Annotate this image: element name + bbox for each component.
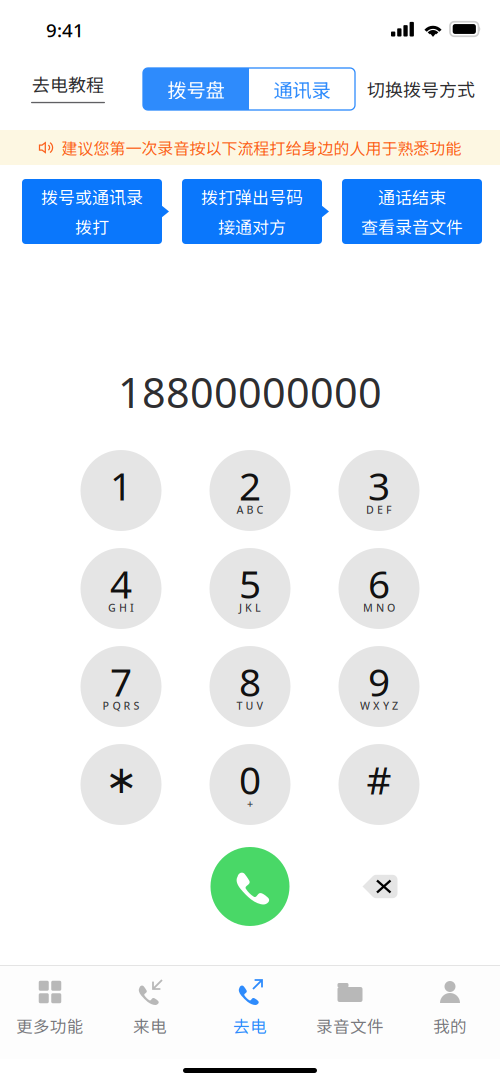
staticText: D E F bbox=[366, 502, 392, 517]
button[interactable]: 拨打弹出号码 bbox=[182, 179, 329, 244]
staticText: 拨打 bbox=[75, 214, 109, 239]
staticText: 2 bbox=[239, 460, 261, 511]
staticText: 通讯录 bbox=[273, 75, 330, 103]
staticText: 1 bbox=[110, 460, 132, 511]
button[interactable]: Delete bbox=[362, 873, 398, 900]
staticText: 拨打弹出号码 bbox=[201, 184, 303, 209]
button[interactable]: 5 bbox=[209, 548, 290, 629]
button[interactable]: 录音文件 bbox=[300, 962, 400, 1062]
button[interactable]: 0 bbox=[209, 744, 290, 825]
staticText: 接通对方 bbox=[218, 214, 286, 239]
staticText: 查看录音文件 bbox=[361, 214, 463, 239]
staticText: G H I bbox=[108, 600, 134, 615]
staticText: 9 bbox=[368, 656, 390, 707]
staticText: 去电 bbox=[233, 1013, 267, 1037]
button[interactable]: 更多功能 bbox=[0, 962, 100, 1062]
staticText: 4 bbox=[110, 558, 132, 609]
staticText: T U V bbox=[236, 698, 263, 713]
button[interactable]: 拨号或通讯录 bbox=[22, 179, 169, 244]
button[interactable]: 8 bbox=[209, 646, 290, 727]
staticText: 来电 bbox=[133, 1013, 167, 1037]
staticText: J K L bbox=[239, 600, 261, 615]
staticText: P Q R S bbox=[102, 698, 139, 713]
button[interactable]: 1 bbox=[80, 450, 161, 531]
button[interactable]: 4 bbox=[80, 548, 161, 629]
button[interactable]: 3 bbox=[338, 450, 419, 531]
staticText: 更多功能 bbox=[16, 1013, 84, 1037]
button[interactable]: ∗ bbox=[80, 744, 161, 825]
staticText: + bbox=[247, 796, 253, 811]
staticText: 9:41 bbox=[46, 18, 84, 42]
button[interactable]: 2 bbox=[209, 450, 290, 531]
staticText: 5 bbox=[239, 558, 261, 609]
staticText: 18800000000 bbox=[118, 365, 382, 419]
staticText: 我的 bbox=[433, 1013, 467, 1037]
button[interactable]: 通话结束 bbox=[342, 179, 489, 244]
staticText: 6 bbox=[368, 558, 390, 609]
staticText: A B C bbox=[236, 502, 263, 517]
button[interactable]: 通讯录 bbox=[249, 68, 355, 110]
button[interactable]: 拨号盘 bbox=[143, 68, 249, 110]
staticText: 0 bbox=[239, 754, 261, 805]
staticText: 拨号或通讯录 bbox=[41, 184, 143, 209]
staticText: W X Y Z bbox=[360, 698, 398, 713]
button[interactable]: 7 bbox=[80, 646, 161, 727]
staticText: 通话结束 bbox=[378, 184, 446, 209]
button[interactable]: 来电 bbox=[100, 962, 200, 1062]
staticText: 切换拨号方式 bbox=[367, 76, 475, 102]
staticText: 去电教程 bbox=[32, 71, 104, 97]
button[interactable]: 9 bbox=[338, 646, 419, 727]
staticText: # bbox=[366, 754, 391, 805]
button[interactable]: 我的 bbox=[400, 962, 500, 1062]
staticText: 7 bbox=[110, 656, 132, 707]
button[interactable]: # bbox=[338, 744, 419, 825]
button[interactable]: 6 bbox=[338, 548, 419, 629]
button[interactable]: 去电教程 bbox=[27, 68, 109, 110]
staticText: M N O bbox=[363, 600, 395, 615]
staticText: ∗ bbox=[105, 758, 137, 801]
staticText: 拨号盘 bbox=[167, 75, 224, 103]
staticText: 3 bbox=[368, 460, 390, 511]
button[interactable]: 去电 bbox=[200, 962, 300, 1062]
staticText: 录音文件 bbox=[316, 1013, 384, 1037]
staticText: 建议您第一次录音按以下流程打给身边的人用于熟悉功能 bbox=[61, 136, 461, 159]
staticText: 8 bbox=[239, 656, 261, 707]
button[interactable]: 切换拨号方式 bbox=[367, 68, 475, 110]
button[interactable]: Call bbox=[210, 847, 289, 926]
